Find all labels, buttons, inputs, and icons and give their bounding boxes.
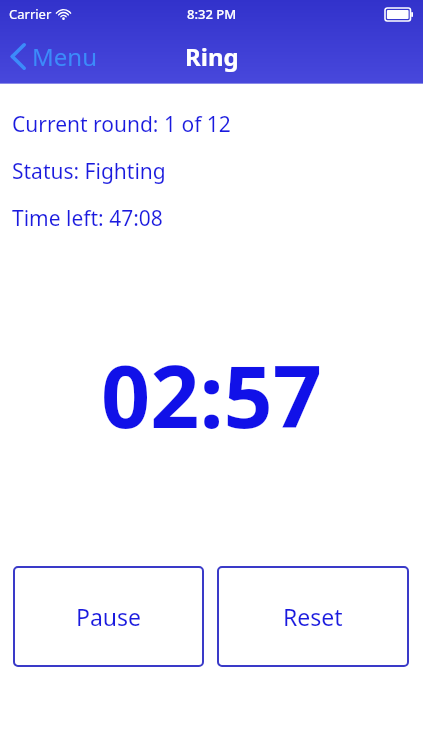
button[interactable]: Menu <box>0 34 107 79</box>
staticText: Current round: 1 of 12 <box>12 110 231 139</box>
button[interactable]: Reset <box>217 566 409 667</box>
button[interactable]: Pause <box>13 566 204 667</box>
staticText: Pause <box>76 601 142 632</box>
staticText: Status: Fighting <box>12 157 166 186</box>
staticText: 02:57 <box>0 336 423 453</box>
staticText: 8:32 PM <box>187 5 237 23</box>
staticText: Time left: 47:08 <box>12 204 163 233</box>
staticText: Reset <box>283 601 343 632</box>
staticText: Carrier <box>9 5 52 23</box>
staticText: Ring <box>185 40 239 73</box>
staticText: Menu <box>32 40 97 73</box>
